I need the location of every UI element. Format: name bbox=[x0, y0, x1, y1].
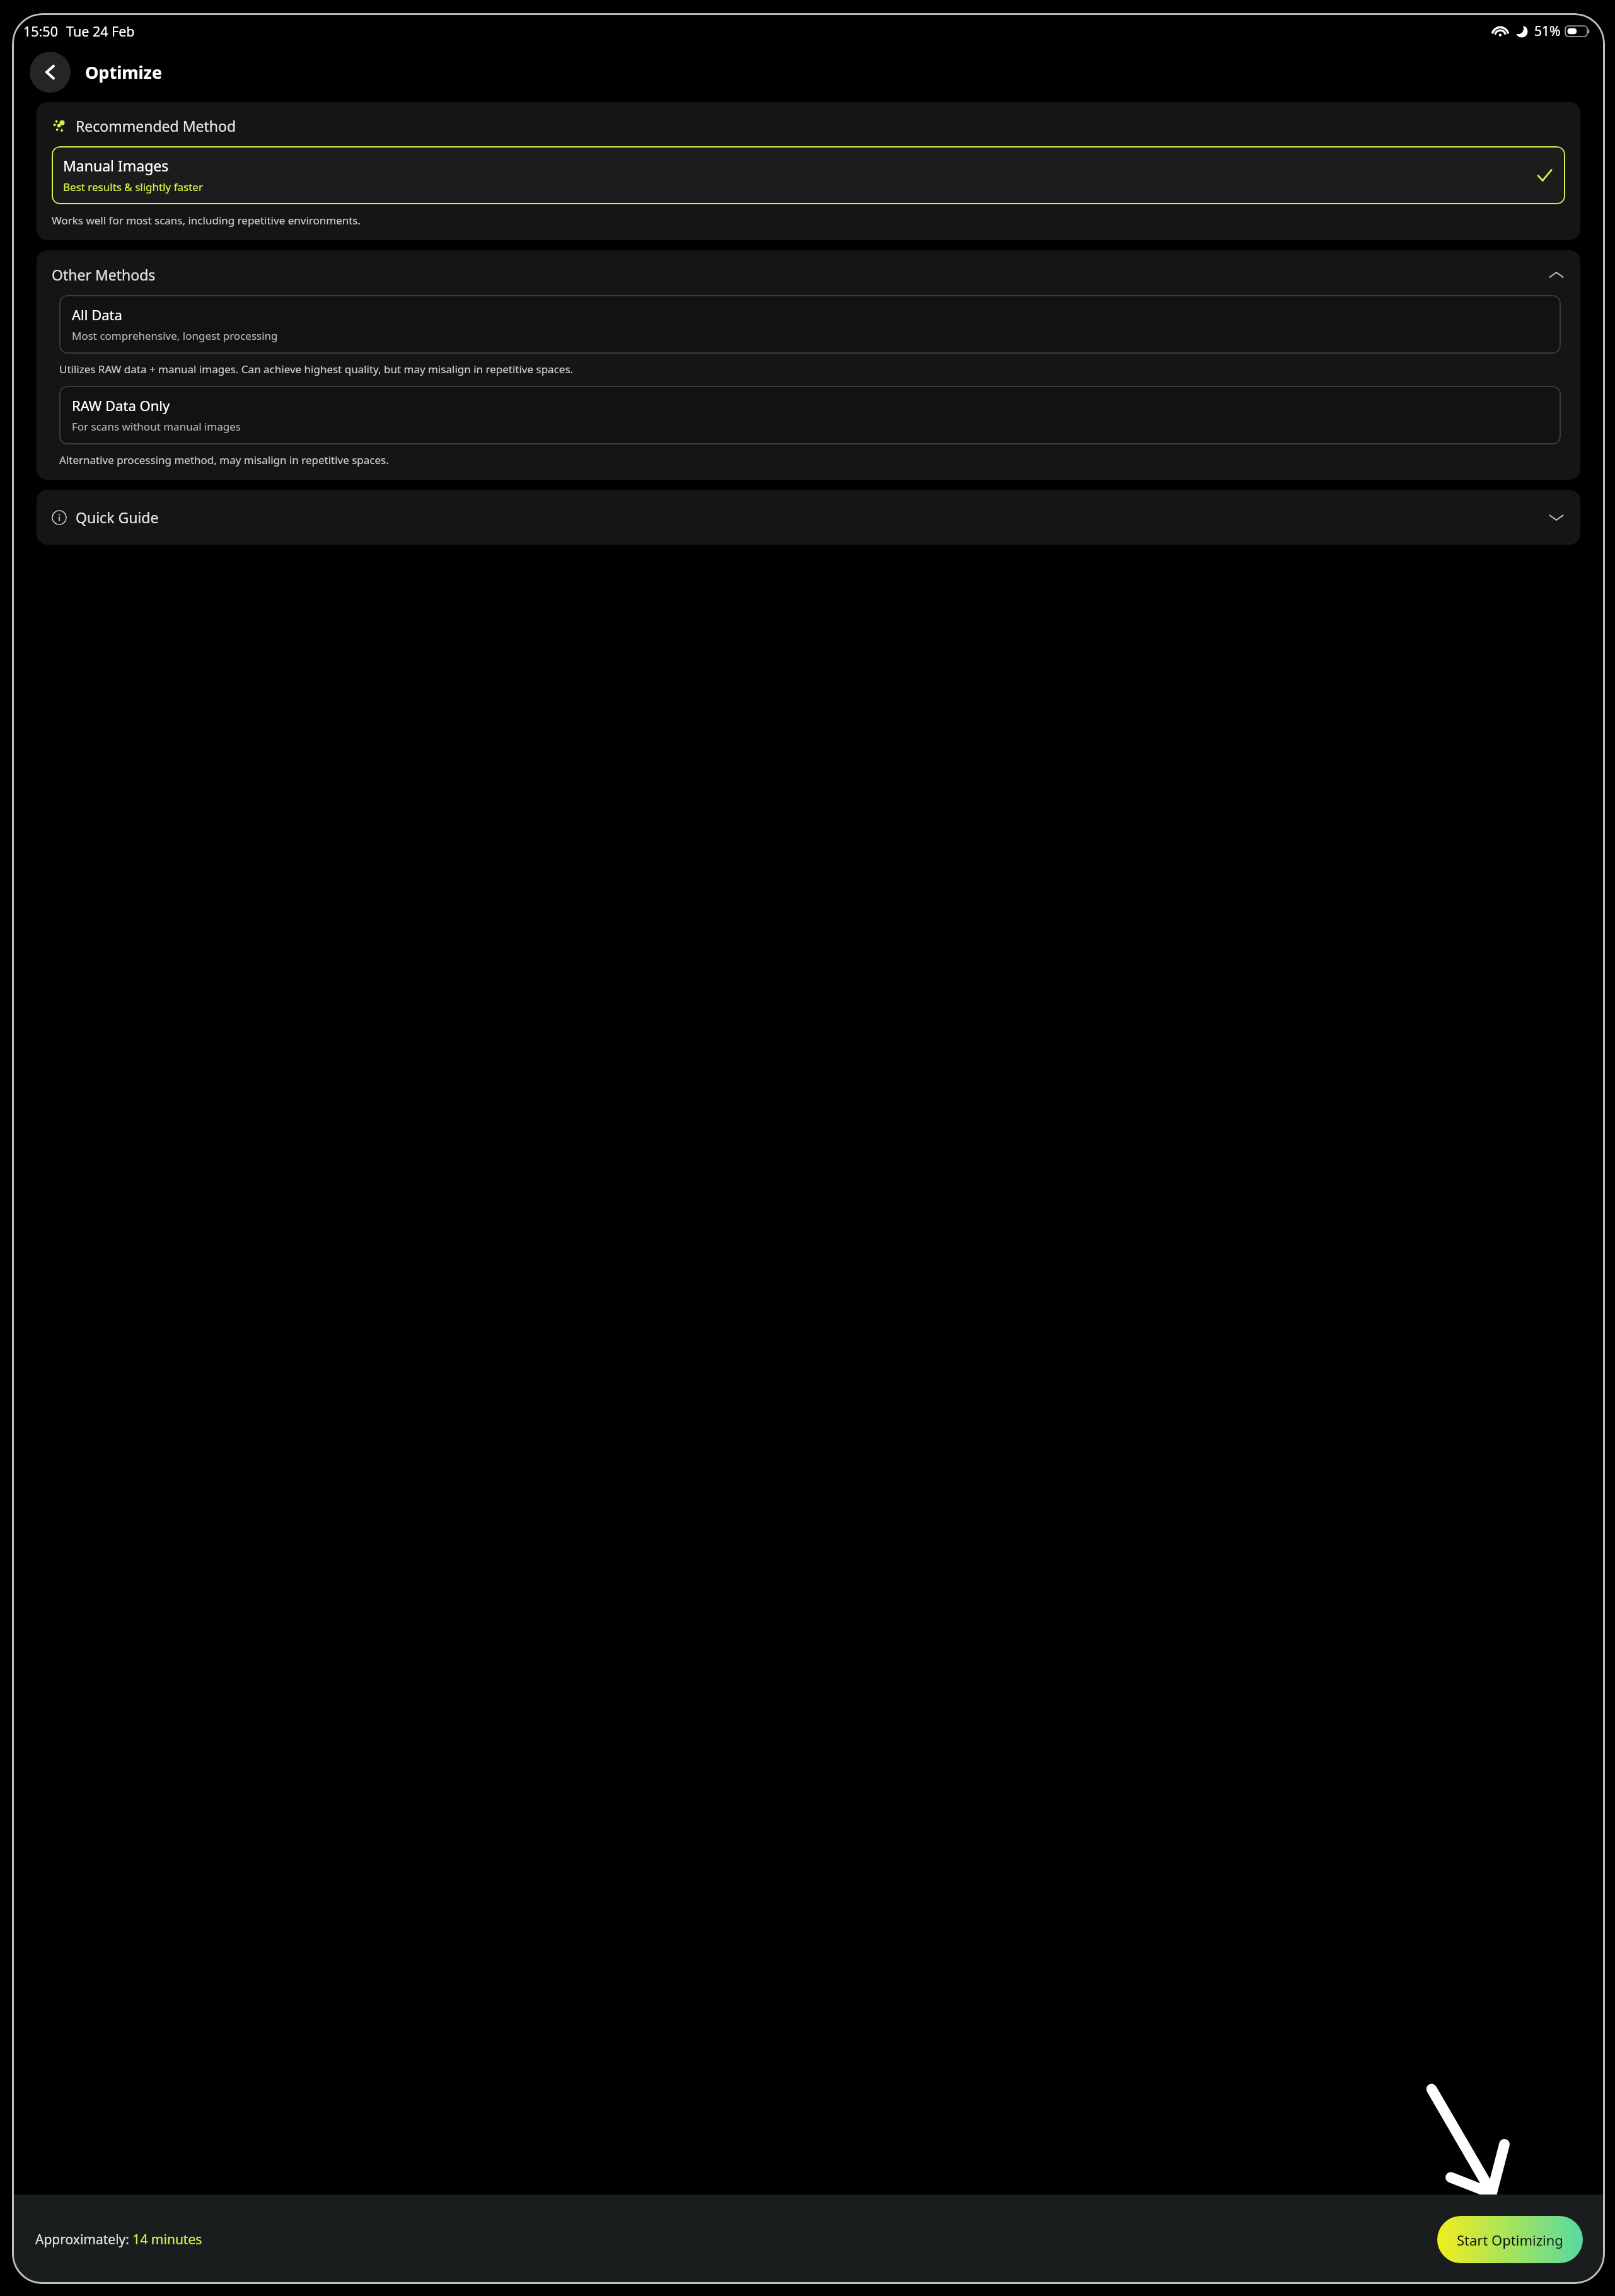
staticText: Approximately: 14 minutes bbox=[35, 2230, 202, 2249]
staticText: All Data bbox=[72, 305, 122, 324]
button[interactable]: Quick Guide bbox=[37, 490, 1580, 545]
staticText: Works well for most scans, including rep… bbox=[52, 213, 361, 228]
button[interactable]: RAW Data Only bbox=[59, 386, 1561, 444]
button[interactable]: Other Methods bbox=[37, 250, 1580, 295]
staticText: Recommended Method bbox=[76, 116, 236, 136]
button[interactable]: Back bbox=[30, 52, 71, 93]
staticText: Start Optimizing bbox=[1457, 2230, 1563, 2249]
staticText: For scans without manual images bbox=[72, 419, 241, 434]
staticText: Utilizes RAW data + manual images. Can a… bbox=[59, 362, 574, 376]
staticText: 51% bbox=[1534, 22, 1561, 40]
staticText: Manual Images bbox=[63, 156, 169, 175]
staticText: Alternative processing method, may misal… bbox=[59, 453, 389, 467]
button[interactable]: All Data bbox=[59, 295, 1561, 354]
staticText: RAW Data Only bbox=[72, 396, 170, 415]
staticText: Most comprehensive, longest processing bbox=[72, 328, 278, 343]
staticText: Other Methods bbox=[52, 265, 156, 284]
staticText: Optimize bbox=[85, 61, 163, 84]
button[interactable]: Start Optimizing bbox=[1437, 2216, 1583, 2263]
button[interactable]: Manual Images bbox=[52, 146, 1565, 204]
staticText: 15:50 bbox=[23, 22, 58, 40]
staticText: Best results & slightly faster bbox=[63, 180, 203, 194]
staticText: Quick Guide bbox=[76, 507, 159, 527]
staticText: Tue 24 Feb bbox=[66, 22, 135, 40]
